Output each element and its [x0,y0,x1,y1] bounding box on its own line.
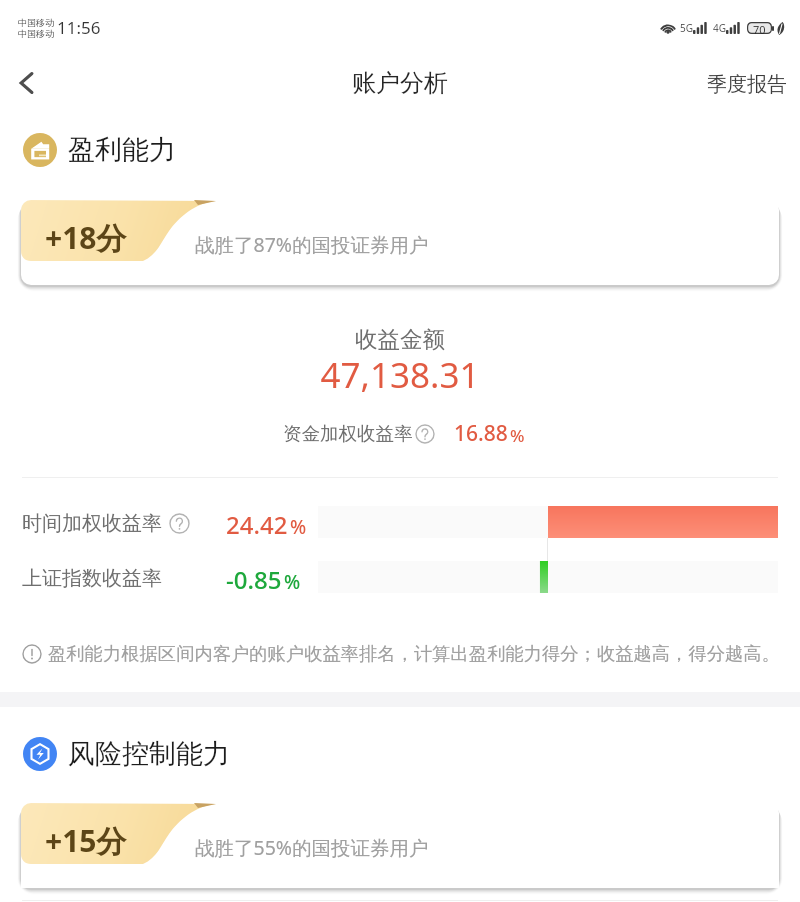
staticText: 盈利能力根据区间内客户的账户收益率排名，计算出盈利能力得分；收益越高，得分越高。 [48,642,780,665]
button[interactable]: 季度报告 [689,62,800,107]
button[interactable]: Back [2,62,50,110]
staticText: +18分 [45,217,127,258]
button[interactable]: +18分 [21,200,779,285]
staticText: 70 [753,22,766,34]
staticText: 24.42 [226,508,288,541]
staticText: 47,138.31 [0,351,800,399]
staticText: 中国移动 [18,28,54,39]
staticText: 上证指数收益率 [22,566,162,591]
staticText: % [284,569,301,595]
staticText: 收益金额 [0,325,800,353]
staticText: -0.85 [226,563,282,596]
staticText: 账户分析 [352,68,448,98]
staticText: 16.88 [454,419,508,448]
staticText: % [510,424,525,447]
staticText: 11:56 [57,16,101,39]
staticText: 战胜了87%的国投证券用户 [195,231,429,258]
staticText: 5G [680,21,693,35]
button[interactable]: +15分 [21,803,779,888]
staticText: 盈利能力 [68,133,176,167]
staticText: 战胜了55%的国投证券用户 [195,834,429,861]
staticText: 风险控制能力 [68,737,230,771]
staticText: 资金加权收益率 [283,422,413,445]
staticText: +15分 [45,820,127,861]
staticText: 4G [713,21,726,35]
staticText: 时间加权收益率 [22,511,162,536]
staticText: % [290,514,307,540]
staticText: 中国移动 [18,17,54,28]
staticText: 季度报告 [707,72,787,97]
